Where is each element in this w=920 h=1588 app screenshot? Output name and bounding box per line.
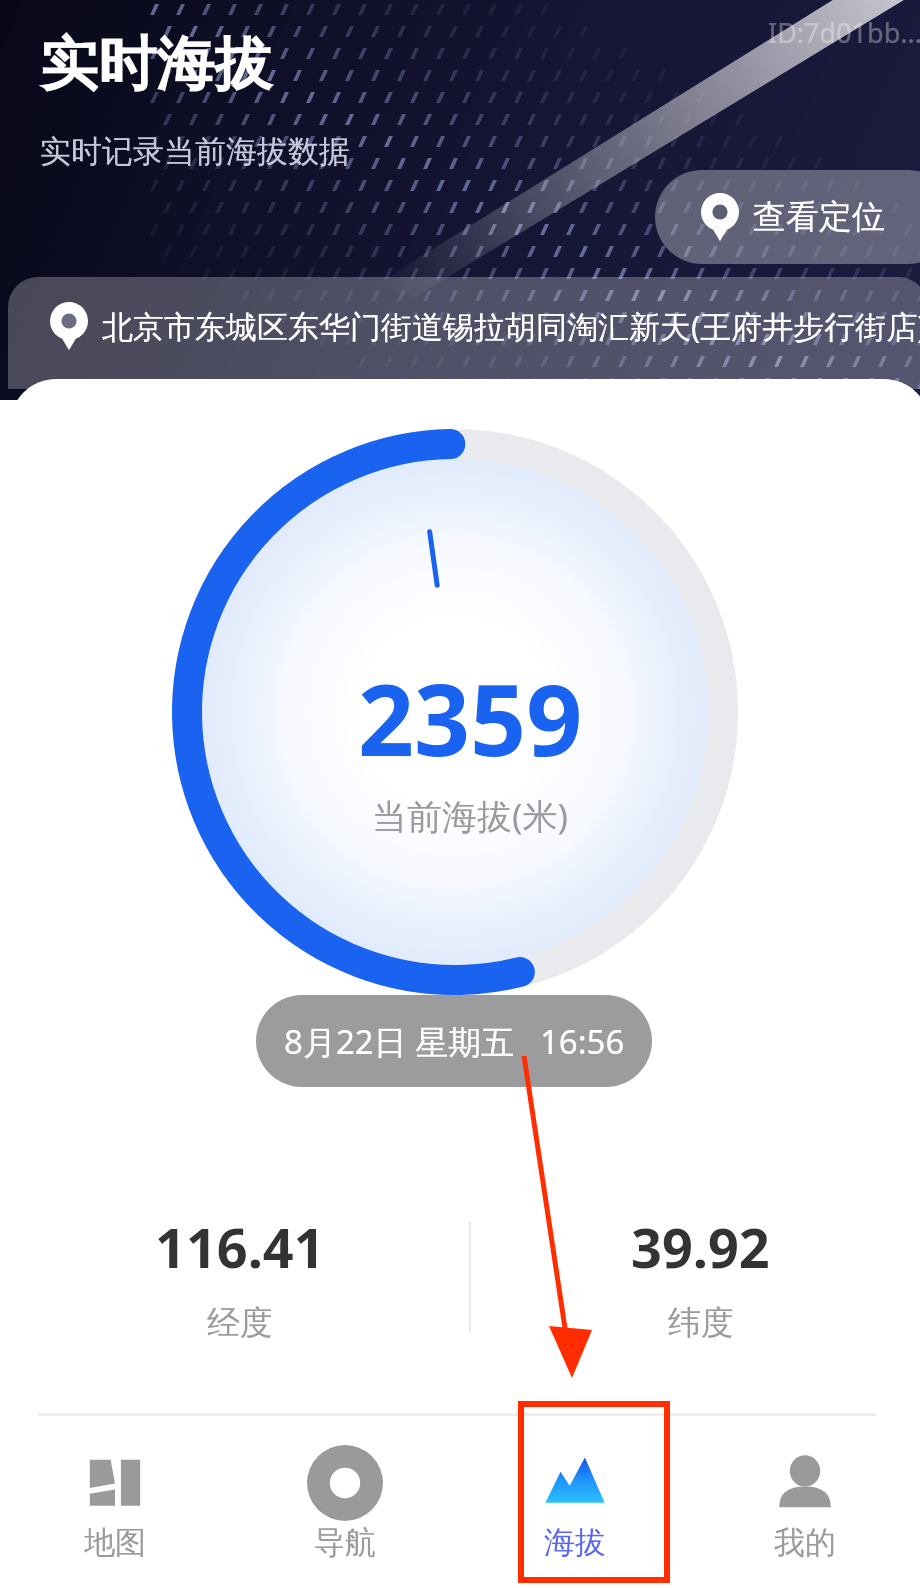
staticText: ID:7d01bb... — [768, 14, 920, 51]
button[interactable]: 8月22日 星期五 16:56 — [256, 995, 652, 1087]
button[interactable]: 北京市东城区东华门街道锡拉胡同淘汇新天(王府井步行街店) — [8, 277, 920, 389]
button[interactable]: 查看定位 — [655, 170, 920, 264]
button[interactable]: 地图 — [0, 1419, 230, 1588]
staticText: 经度 — [207, 1302, 273, 1344]
button[interactable]: 海拔 — [460, 1419, 690, 1588]
staticText: 导航 — [314, 1523, 376, 1562]
staticText: 当前海拔(米) — [372, 792, 569, 840]
staticText: 海拔 — [544, 1523, 606, 1562]
staticText: 纬度 — [668, 1302, 734, 1344]
button[interactable]: 我的 — [690, 1419, 920, 1588]
staticText: 8月22日 星期五 16:56 — [284, 1019, 625, 1064]
staticText: 我的 — [774, 1523, 836, 1562]
staticText: 实时海拔 — [40, 28, 272, 101]
staticText: 地图 — [84, 1523, 146, 1562]
staticText: 2359 — [358, 651, 583, 784]
staticText: 116.41 — [155, 1210, 325, 1284]
staticText: 查看定位 — [753, 196, 885, 238]
button[interactable]: 导航 — [230, 1419, 460, 1588]
button[interactable]: 39.92 — [471, 1210, 920, 1344]
staticText: 实时记录当前海拔数据 — [40, 132, 350, 171]
staticText: 39.92 — [631, 1210, 770, 1284]
staticText: 北京市东城区东华门街道锡拉胡同淘汇新天(王府井步行街店) — [102, 305, 920, 347]
button[interactable]: 116.41 — [10, 1210, 469, 1344]
